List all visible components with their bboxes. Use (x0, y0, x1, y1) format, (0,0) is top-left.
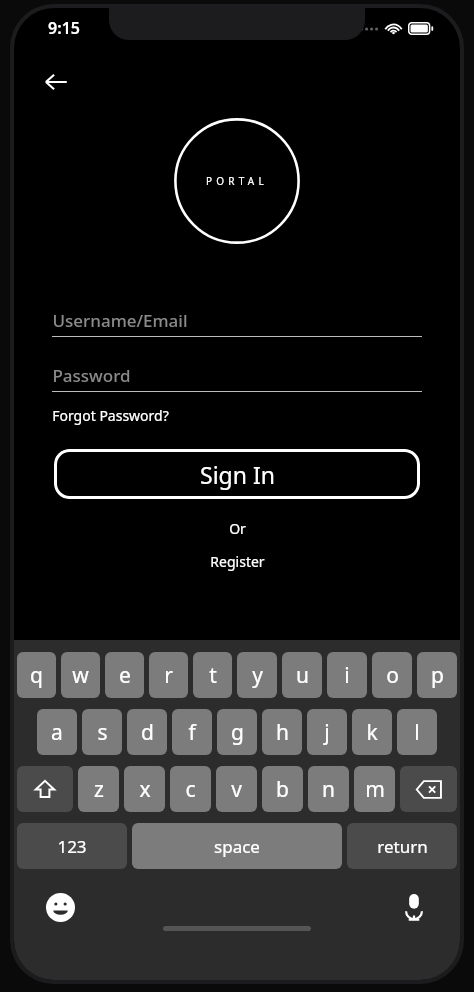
staticText: Forgot Password? (52, 406, 169, 425)
button[interactable]: Shift (17, 766, 73, 812)
button[interactable]: s (82, 709, 122, 755)
staticText: v (231, 775, 242, 804)
button[interactable]: x (124, 766, 165, 812)
button[interactable]: Backspace (400, 766, 457, 812)
staticText: m (365, 775, 385, 804)
button[interactable]: Back (34, 60, 78, 104)
button[interactable]: g (217, 709, 257, 755)
staticText: Password (52, 364, 131, 387)
button[interactable]: Sign In (54, 449, 420, 499)
staticText: Or (229, 519, 246, 538)
staticText: Username/Email (52, 309, 188, 332)
button[interactable]: Forgot Password? (52, 404, 169, 427)
button[interactable]: n (308, 766, 349, 812)
staticText: l (414, 718, 420, 747)
staticText: f (188, 718, 196, 747)
button[interactable]: l (397, 709, 437, 755)
staticText: i (344, 661, 350, 690)
staticText: p (431, 661, 444, 690)
staticText: 9:15 (48, 17, 80, 39)
staticText: c (185, 775, 196, 804)
button[interactable]: e (105, 652, 144, 698)
button[interactable]: f (172, 709, 212, 755)
staticText: n (322, 775, 335, 804)
staticText: space (214, 835, 260, 858)
staticText: 123 (57, 835, 87, 858)
button[interactable]: q (17, 652, 56, 698)
button[interactable]: c (170, 766, 211, 812)
button[interactable]: return (347, 823, 457, 869)
button[interactable]: Emoji (40, 887, 80, 927)
button[interactable]: a (37, 709, 77, 755)
button[interactable]: d (127, 709, 167, 755)
staticText: q (30, 661, 43, 690)
button[interactable]: j (307, 709, 347, 755)
button[interactable]: z (78, 766, 119, 812)
button[interactable]: m (354, 766, 395, 812)
staticText: t (209, 661, 217, 690)
staticText: u (296, 661, 309, 690)
button[interactable]: y (237, 652, 277, 698)
button[interactable]: Password (52, 359, 422, 392)
button[interactable]: v (216, 766, 257, 812)
staticText: j (324, 718, 330, 747)
staticText: Sign In (200, 459, 275, 490)
button[interactable]: 123 (17, 823, 127, 869)
staticText: g (231, 718, 244, 747)
staticText: e (119, 661, 131, 690)
button[interactable]: u (282, 652, 322, 698)
button[interactable]: i (327, 652, 367, 698)
staticText: b (276, 775, 289, 804)
staticText: o (386, 661, 399, 690)
staticText: d (141, 718, 154, 747)
button[interactable]: p (417, 652, 457, 698)
button[interactable]: r (149, 652, 188, 698)
button[interactable]: h (262, 709, 302, 755)
button[interactable]: space (132, 823, 342, 869)
staticText: y (252, 661, 263, 690)
staticText: h (276, 718, 289, 747)
staticText: return (377, 835, 428, 858)
button[interactable]: Register (202, 550, 273, 573)
button[interactable]: b (262, 766, 303, 812)
button[interactable]: t (193, 652, 232, 698)
button[interactable]: o (372, 652, 412, 698)
staticText: w (72, 661, 89, 690)
button[interactable]: Voice input (394, 887, 434, 927)
staticText: s (97, 718, 108, 747)
staticText: a (51, 718, 63, 747)
staticText: Register (210, 552, 265, 571)
staticText: r (164, 661, 173, 690)
staticText: PORTAL (206, 174, 268, 188)
button[interactable]: Username/Email (52, 304, 422, 337)
staticText: z (94, 775, 104, 804)
staticText: k (366, 718, 378, 747)
staticText: x (139, 775, 151, 804)
button[interactable]: w (61, 652, 100, 698)
button[interactable]: k (352, 709, 392, 755)
